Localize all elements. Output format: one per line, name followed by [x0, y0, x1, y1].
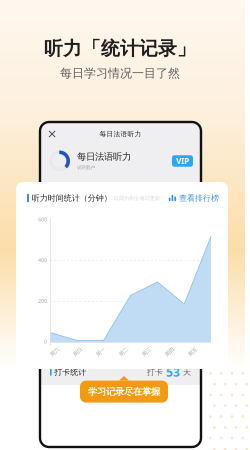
- staticText: 0: [44, 338, 47, 345]
- staticText: 打卡: [147, 367, 163, 377]
- staticText: VIP: [176, 156, 189, 166]
- staticText: 学习记录尽在掌握: [88, 386, 160, 397]
- button[interactable]: 每日法语听力: [40, 146, 201, 176]
- button[interactable]: 关闭: [45, 127, 59, 141]
- staticText: 查看排行榜: [179, 193, 219, 203]
- staticText: 200: [38, 297, 47, 304]
- staticText: 周二: [118, 349, 128, 355]
- staticText: 听力时间统计（分钟）: [32, 193, 112, 203]
- staticText: 以周为单位·每日更新: [114, 194, 160, 202]
- button[interactable]: 查看排行榜: [168, 193, 219, 203]
- staticText: 每日法语听力: [77, 151, 131, 162]
- staticText: 每日法语听力: [99, 130, 141, 138]
- staticText: 周四: [164, 349, 174, 355]
- staticText: 周五: [187, 349, 197, 355]
- staticText: 600: [38, 216, 47, 223]
- staticText: 打卡统计: [54, 367, 86, 377]
- staticText: 53: [163, 364, 183, 380]
- staticText: 天: [183, 367, 191, 377]
- staticText: 周三: [141, 349, 151, 355]
- staticText: 每日学习情况一目了然: [60, 66, 180, 81]
- staticText: 400: [38, 257, 47, 264]
- staticText: 周六: [49, 349, 59, 355]
- staticText: 周一: [95, 349, 105, 355]
- staticText: VIP用户: [77, 164, 95, 171]
- staticText: 听力「统计记录」: [44, 37, 196, 60]
- staticText: 周日: [72, 349, 82, 355]
